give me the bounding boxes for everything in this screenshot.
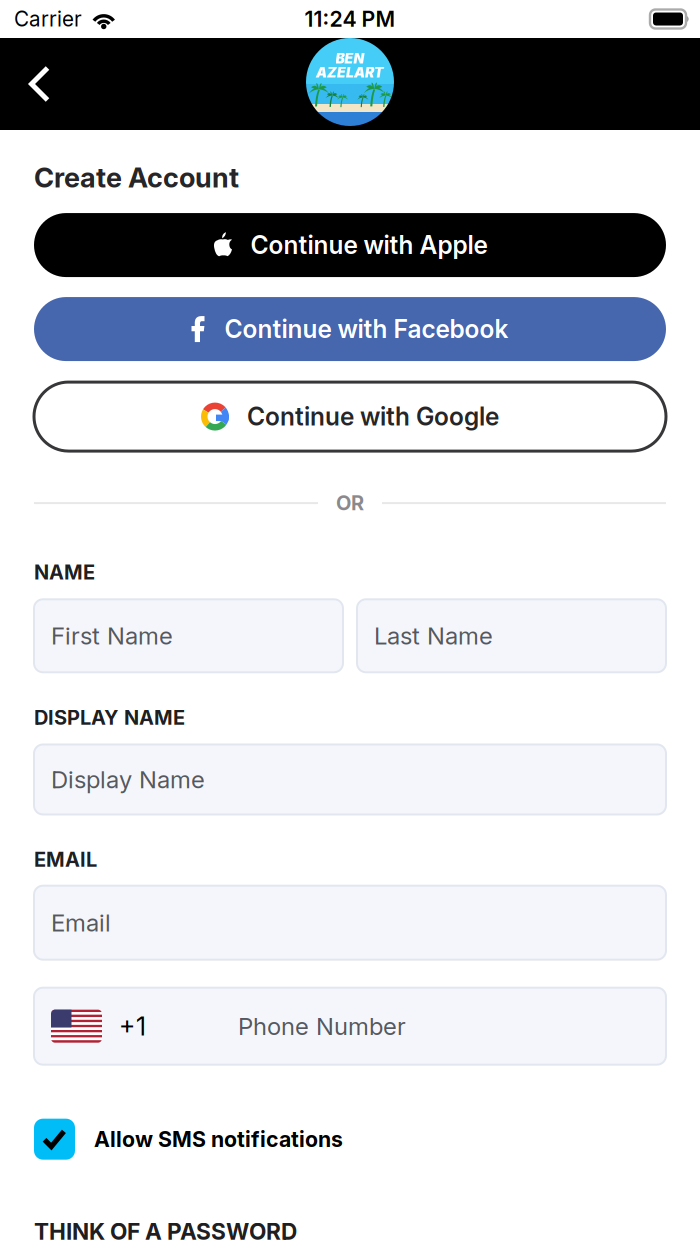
button[interactable]: Last Name [357,599,666,672]
staticText: NAME [34,560,95,584]
staticText: Continue with Facebook [224,314,508,344]
button[interactable]: +1 [34,988,666,1065]
staticText: First Name [51,621,173,650]
staticText: DISPLAY NAME [34,705,185,729]
staticText: Display Name [51,765,205,794]
staticText: Carrier [14,6,82,31]
staticText: AZELART [316,64,384,81]
staticText: +1 [119,1011,146,1041]
staticText: Email [51,908,111,937]
button[interactable]: Display Name [34,744,666,814]
staticText: Last Name [374,621,493,650]
button[interactable]: Continue with Google [34,382,666,451]
button[interactable]: Continue with Apple [34,213,666,277]
staticText: THINK OF A PASSWORD [34,1218,297,1244]
staticText: Continue with Apple [250,230,487,260]
staticText: OR [336,491,364,515]
staticText: Phone Number [238,1012,406,1041]
button[interactable]: Back [0,39,75,128]
staticText: EMAIL [34,847,97,872]
staticText: Allow SMS notifications [94,1126,343,1152]
button[interactable]: Email [34,886,666,960]
staticText: 11:24 PM [304,6,395,32]
staticText: Create Account [34,161,239,194]
button[interactable]: Allow SMS notifications [34,1119,666,1160]
button[interactable]: Continue with Facebook [34,297,666,361]
staticText: Continue with Google [247,402,499,431]
staticText: BEN [335,50,364,67]
button[interactable]: First Name [34,599,343,672]
